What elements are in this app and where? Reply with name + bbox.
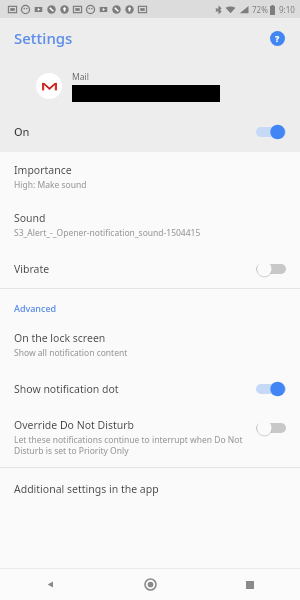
staticText: 72%: [252, 4, 268, 15]
staticText: On the lock screen: [14, 331, 106, 345]
button[interactable]: Help: [264, 25, 290, 51]
button[interactable]: Mail: [0, 58, 300, 114]
staticText: High: Make sound: [14, 179, 87, 191]
button[interactable]: Show notification dot: [0, 370, 300, 408]
staticText: Show notification dot: [14, 382, 119, 396]
staticText: Show all notification content: [14, 347, 128, 359]
button[interactable]: Toggle on: [256, 381, 286, 397]
staticText: Additional settings in the app: [14, 482, 159, 496]
button[interactable]: Toggle off: [256, 261, 286, 277]
button[interactable]: Override Do Not Disturb: [0, 408, 300, 467]
staticText: Importance: [14, 163, 72, 177]
staticText: S3_Alert_-_Opener-notification_sound-150…: [14, 227, 201, 239]
button[interactable]: Sound: [0, 202, 300, 250]
button[interactable]: On: [0, 114, 300, 149]
staticText: Override Do Not Disturb: [14, 418, 135, 432]
button[interactable]: Settings: [12, 24, 75, 52]
staticText: On: [14, 124, 30, 139]
button[interactable]: Importance: [0, 152, 300, 202]
button[interactable]: Toggle on: [256, 124, 286, 140]
staticText: Vibrate: [14, 262, 50, 276]
staticText: Advanced: [14, 302, 57, 314]
button[interactable]: Additional settings in the app: [0, 468, 300, 510]
button[interactable]: On the lock screen: [0, 323, 300, 370]
staticText: Let these notifications continue to inte…: [14, 434, 243, 456]
button[interactable]: Home: [100, 569, 200, 600]
button[interactable]: Recent apps: [200, 569, 300, 600]
button[interactable]: Advanced: [0, 289, 300, 323]
staticText: Mail: [72, 71, 89, 83]
staticText: ?: [275, 32, 280, 44]
button[interactable]: Toggle off: [256, 420, 286, 436]
staticText: Settings: [14, 28, 73, 48]
staticText: 9:10: [279, 4, 295, 15]
button[interactable]: Vibrate: [0, 250, 300, 288]
button[interactable]: Back: [0, 569, 100, 600]
staticText: Sound: [14, 211, 46, 225]
